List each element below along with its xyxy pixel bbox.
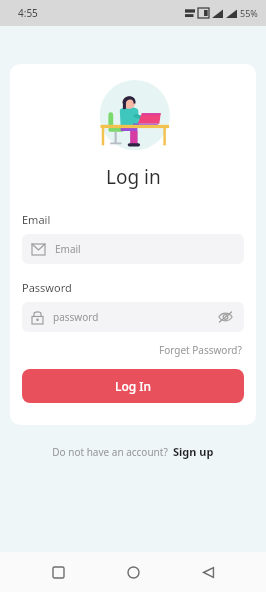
button[interactable]: Sign up: [172, 443, 215, 460]
staticText: password: [53, 310, 99, 324]
staticText: Password: [22, 280, 72, 295]
button[interactable]: Show password: [216, 308, 234, 326]
staticText: 4:55: [18, 6, 38, 20]
staticText: Do not have an account?: [52, 445, 168, 459]
staticText: Email: [55, 242, 81, 256]
staticText: Email: [22, 212, 51, 227]
button[interactable]: Recents: [41, 555, 75, 589]
button[interactable]: Home: [116, 555, 150, 589]
button[interactable]: password: [22, 302, 244, 332]
button[interactable]: Back: [191, 555, 225, 589]
staticText: Log In: [115, 378, 152, 394]
staticText: Log in: [106, 164, 161, 190]
button[interactable]: Forget Password?: [157, 341, 244, 359]
button[interactable]: Log In: [22, 369, 244, 403]
button[interactable]: Email: [22, 234, 244, 264]
staticText: 55%: [240, 7, 258, 19]
